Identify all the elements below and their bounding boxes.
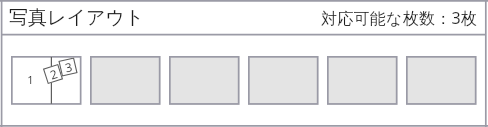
staticText: 1 xyxy=(25,72,36,87)
button[interactable]: レイアウト 6 xyxy=(406,56,477,105)
staticText: 2 xyxy=(48,65,59,83)
button[interactable]: レイアウト 3 xyxy=(169,56,240,105)
staticText: 写真レイアウト xyxy=(9,6,145,30)
button[interactable]: レイアウト 4 xyxy=(248,56,319,105)
staticText: 対応可能な枚数：3枚 xyxy=(321,7,478,29)
button[interactable]: レイアウト 2 xyxy=(90,56,161,105)
button[interactable]: レイアウト 1 xyxy=(11,56,82,105)
staticText: 3 xyxy=(63,58,74,75)
button[interactable]: レイアウト 5 xyxy=(327,56,398,105)
